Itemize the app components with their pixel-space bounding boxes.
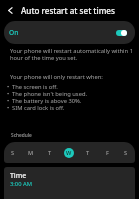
staticText: T <box>48 149 52 157</box>
button[interactable]: M <box>22 142 40 163</box>
button[interactable]: Navigate up <box>0 0 21 21</box>
button[interactable]: On <box>4 21 135 44</box>
staticText: W <box>66 149 72 157</box>
button[interactable]: T <box>78 142 97 163</box>
staticText: • <box>7 97 10 104</box>
staticText: The phone isn't being used. <box>12 90 88 97</box>
staticText: Time <box>10 171 27 180</box>
staticText: M <box>28 149 34 157</box>
staticText: SIM card lock is off. <box>12 104 65 111</box>
staticText: The battery is above 30%. <box>12 97 82 104</box>
staticText: • <box>7 83 10 90</box>
staticText: • <box>7 104 10 111</box>
button[interactable]: S <box>116 142 135 163</box>
button[interactable]: F <box>97 142 116 163</box>
staticText: F <box>106 149 109 157</box>
button[interactable]: Time <box>4 167 135 199</box>
staticText: The screen is off. <box>12 83 58 90</box>
staticText: Your phone will restart automatically wi… <box>10 47 136 62</box>
staticText: Schedule <box>11 132 32 139</box>
staticText: S <box>11 149 15 157</box>
staticText: Your phone will only restart when: <box>10 73 103 81</box>
staticText: Auto restart at set times <box>21 5 115 16</box>
button[interactable]: S <box>4 142 22 163</box>
staticText: T <box>86 149 90 157</box>
staticText: 3:00 AM <box>10 180 32 188</box>
button[interactable]: W <box>59 142 78 163</box>
staticText: On <box>9 28 19 37</box>
staticText: S <box>124 149 128 157</box>
button[interactable]: T <box>40 142 59 163</box>
staticText: • <box>7 90 10 97</box>
